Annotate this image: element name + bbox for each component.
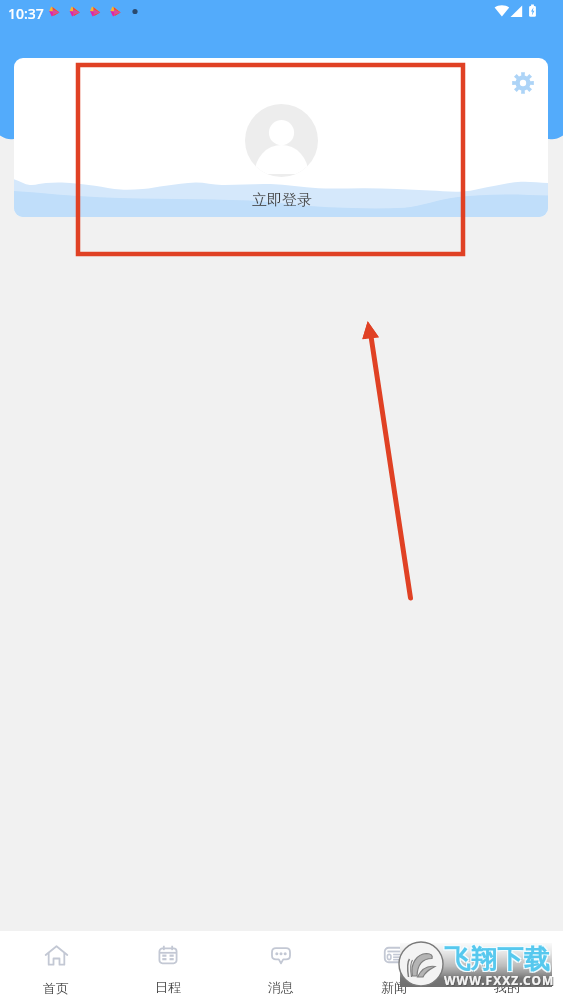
staticText: 立即登录 [252,191,312,210]
staticText: 我的 [494,979,520,995]
button[interactable]: Settings [510,70,536,96]
staticText: 飞翔下载 [445,944,551,977]
staticText: 新闻 [381,979,407,995]
staticText: 飞翔下载 [444,943,550,976]
staticText: 消息 [268,979,294,995]
staticText: 日程 [155,979,181,995]
button[interactable]: 消息 [224,931,337,995]
button[interactable]: 我的 [450,931,563,995]
button[interactable]: 新闻 [337,931,450,995]
staticText: WWW.FXXZ.COM [444,972,555,988]
staticText: 10:37 [8,4,44,23]
button[interactable]: 首页 [0,931,112,996]
staticText: WWW.FXXZ.COM [445,973,556,989]
button[interactable]: 立即登录 [14,58,548,217]
button[interactable]: 日程 [112,931,224,995]
staticText: 飞翔下载 [443,942,549,975]
staticText: 飞翔下载 [445,942,551,975]
staticText: 飞翔下载 [443,944,549,977]
staticText: 首页 [43,980,69,996]
